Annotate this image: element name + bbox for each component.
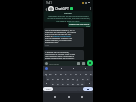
button[interactable]: Shift: [43, 81, 50, 86]
staticText: W: [49, 72, 52, 75]
staticText: 10:03: [45, 59, 49, 61]
staticText: L: [87, 77, 89, 80]
button[interactable]: Recents: [79, 94, 84, 99]
staticText: 10:02: [86, 25, 90, 27]
staticText: Messages and calls are end-to-end encryp…: [48, 15, 89, 18]
staticText: assistant. By continuing, you agree: [45, 31, 76, 34]
button[interactable]: Home: [66, 94, 71, 99]
button[interactable]: J: [75, 76, 80, 81]
button[interactable]: H: [70, 76, 75, 81]
button[interactable]: M: [80, 81, 85, 86]
staticText: E: [55, 72, 57, 75]
button[interactable]: More options: [89, 6, 92, 11]
staticText: H: [72, 77, 74, 80]
staticText: summarise or answer. Start a new: [45, 53, 75, 56]
button[interactable]: Enter: [83, 87, 93, 91]
staticText: not to use this service for any: [45, 33, 72, 36]
staticText: 9:41: [46, 1, 52, 5]
button[interactable]: O: [83, 71, 88, 76]
staticText: begin chatting with the assistant.: [45, 57, 75, 60]
staticText: I: [80, 72, 81, 75]
button[interactable]: You're messaging ChatGPT, an AI: [44, 28, 84, 47]
button[interactable]: C: [60, 81, 65, 86]
staticText: K: [82, 77, 84, 80]
staticText: Security: [64, 12, 72, 15]
staticText: Q: [45, 72, 47, 75]
staticText: B: [72, 82, 74, 85]
staticText: No one outside of this chat, not even Wh…: [47, 17, 90, 20]
button[interactable]: Z: [50, 81, 55, 86]
staticText: T: [65, 72, 67, 75]
button[interactable]: Y: [68, 71, 73, 76]
staticText: Y: [70, 72, 72, 75]
button[interactable]: ?123: [43, 87, 53, 91]
button[interactable]: E: [53, 71, 58, 76]
staticText: S: [52, 77, 54, 80]
button[interactable]: Please tell me more: [68, 22, 91, 27]
button[interactable]: Back: [44, 7, 48, 11]
staticText: P: [90, 72, 92, 75]
button[interactable]: X: [55, 81, 60, 86]
button[interactable]: Attach: [77, 62, 80, 65]
button[interactable]: Google: [45, 67, 48, 70]
staticText: can read or listen to them.: [56, 20, 80, 22]
staticText: U: [75, 72, 77, 75]
staticText: V: [67, 82, 69, 85]
button[interactable]: N: [75, 81, 80, 86]
staticText: may be reviewed. ChatGPT can: [45, 37, 73, 40]
staticText: F: [62, 77, 64, 80]
staticText: R: [60, 72, 62, 75]
button[interactable]: B: [70, 81, 75, 86]
staticText: openai.com/policies: [53, 35, 71, 38]
staticText: J: [77, 77, 78, 80]
button[interactable]: G: [65, 76, 70, 81]
staticText: Z: [52, 82, 54, 85]
staticText: G: [67, 77, 69, 80]
staticText: ChatGPT: [55, 6, 69, 11]
button[interactable]: Backspace: [85, 81, 93, 86]
staticText: A: [47, 77, 49, 80]
button[interactable]: P: [88, 71, 93, 76]
button[interactable]: I: [78, 71, 83, 76]
staticText: 10:02: [45, 44, 49, 46]
button[interactable]: Camera: [82, 62, 85, 65]
button[interactable]: D: [55, 76, 60, 81]
button[interactable]: R: [58, 71, 63, 76]
staticText: N: [77, 82, 79, 85]
button[interactable]: L: [85, 76, 90, 81]
staticText: M: [81, 82, 84, 85]
button[interactable]: K: [80, 76, 85, 81]
staticText: D: [57, 77, 59, 80]
staticText: important info.: [45, 41, 59, 44]
button[interactable]: S: [50, 76, 55, 81]
button[interactable]: Security: [44, 11, 92, 22]
button[interactable]: W: [48, 71, 53, 76]
staticText: make mistakes, so check your: [45, 39, 72, 42]
button[interactable]: Send voice message: [87, 60, 93, 66]
button[interactable]: Back: [52, 94, 57, 99]
staticText: Message: [49, 62, 59, 65]
staticText: C: [62, 82, 64, 85]
staticText: X: [57, 82, 59, 85]
staticText: policy at: [45, 35, 53, 38]
staticText: You're messaging ChatGPT, an AI: [45, 29, 75, 32]
staticText: A specific tap can translate,: [45, 51, 70, 54]
staticText: ?123: [46, 88, 51, 91]
staticText: O: [85, 72, 87, 75]
staticText: Please tell me more: [69, 23, 90, 26]
button[interactable]: A specific tap can translate,: [44, 50, 84, 61]
staticText: chat anytime. Send a message to: [45, 55, 75, 58]
button[interactable]: Q: [43, 71, 48, 76]
button[interactable]: T: [63, 71, 68, 76]
button[interactable]: F: [60, 76, 65, 81]
button[interactable]: U: [73, 71, 78, 76]
button[interactable]: V: [65, 81, 70, 86]
button[interactable]: A: [46, 76, 50, 81]
button[interactable]: Message: [44, 61, 86, 66]
